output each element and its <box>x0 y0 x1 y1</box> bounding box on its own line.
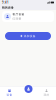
button[interactable]: 设备 <box>2 88 17 97</box>
staticText: 我的设备 <box>2 6 14 9</box>
button[interactable]: 语音助手 <box>24 85 32 93</box>
button[interactable]: 添加设备 <box>5 32 51 40</box>
staticText: 我的 <box>43 93 49 96</box>
button[interactable]: 我的 <box>39 88 54 97</box>
staticText: 添加设备 <box>24 34 36 38</box>
staticText: 已连接 <box>13 17 22 20</box>
staticText: 客厅音箱 <box>13 13 25 16</box>
button[interactable]: 客厅音箱 <box>2 11 54 22</box>
staticText: 9:41 <box>2 1 9 4</box>
staticText: 设备 <box>6 93 12 96</box>
